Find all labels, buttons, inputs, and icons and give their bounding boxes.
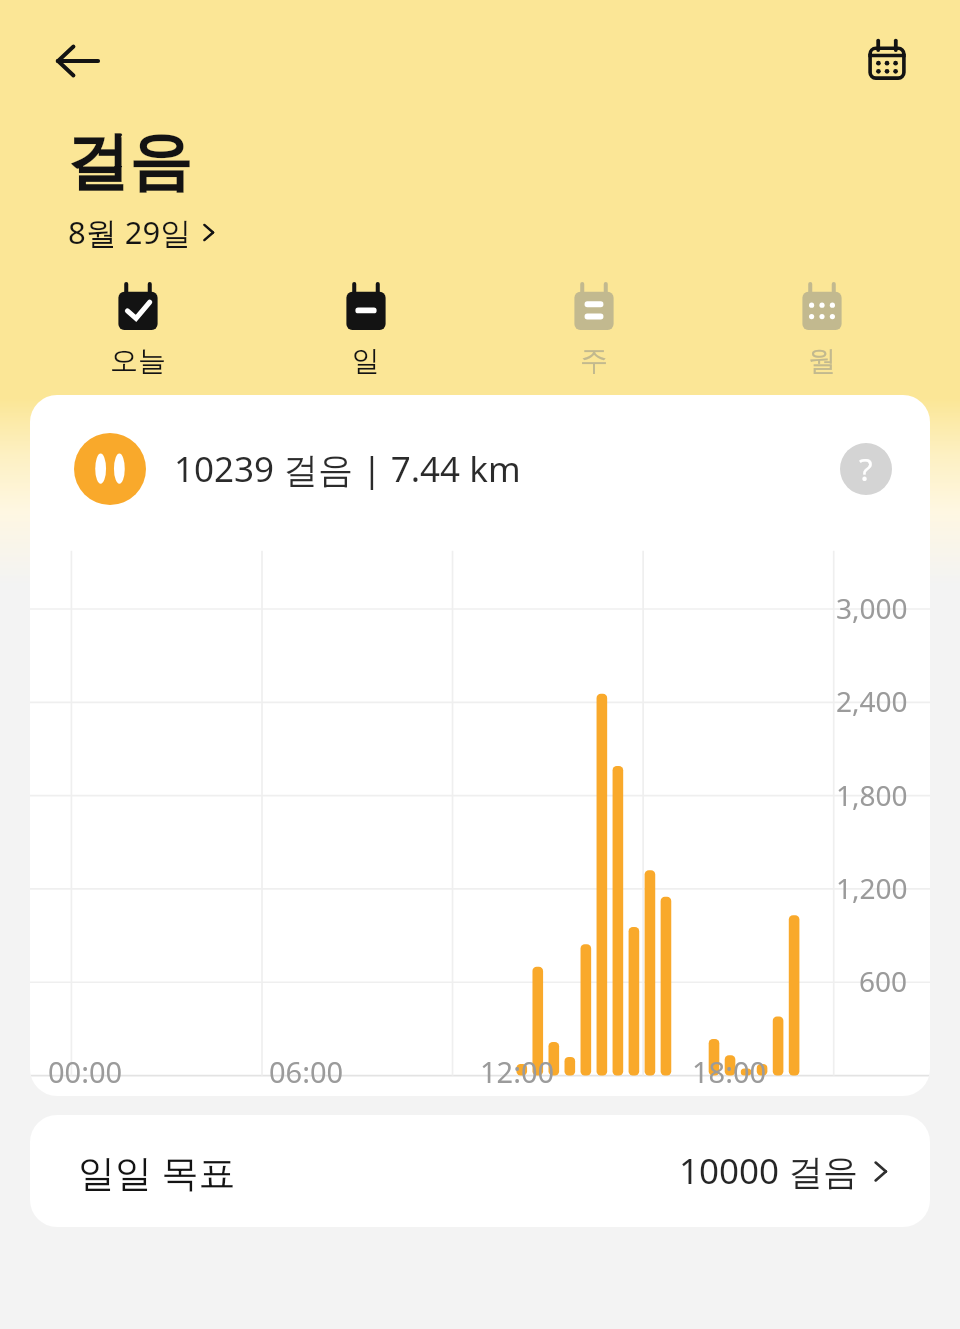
button[interactable]: 일 [252,279,480,381]
button[interactable]: 8월 29일 [66,209,222,255]
button[interactable]: 월 [708,279,936,381]
staticText: 1,200 [836,869,908,907]
staticText: 06:00 [269,1052,344,1091]
staticText: 18:00 [692,1052,767,1091]
button[interactable]: 일일 목표 [30,1115,930,1227]
button[interactable]: Help [840,443,892,495]
staticText: 주 [580,343,608,378]
staticText: 10000 걸음 [679,1147,859,1195]
staticText: 일일 목표 [78,1146,236,1197]
staticText: 12:00 [480,1052,555,1091]
staticText: 00:00 [48,1052,123,1091]
staticText: 3,000 [836,589,908,627]
staticText: 월 [808,343,836,378]
button[interactable]: 주 [480,279,708,381]
staticText: 1,800 [836,776,908,814]
button[interactable]: Calendar [856,30,918,92]
staticText: ? [859,448,873,490]
button[interactable]: 10239 걸음 | 7.44 km [30,395,930,543]
staticText: 일 [352,343,380,378]
staticText: 오늘 [110,343,166,378]
staticText: 8월 29일 [68,211,192,253]
staticText: 2,400 [836,682,908,720]
staticText: 600 [859,962,908,1000]
staticText: 10239 걸음 | 7.44 km [174,445,521,493]
button[interactable]: 오늘 [24,279,252,381]
staticText: 걸음 [66,122,192,201]
button[interactable]: Back [46,30,108,92]
